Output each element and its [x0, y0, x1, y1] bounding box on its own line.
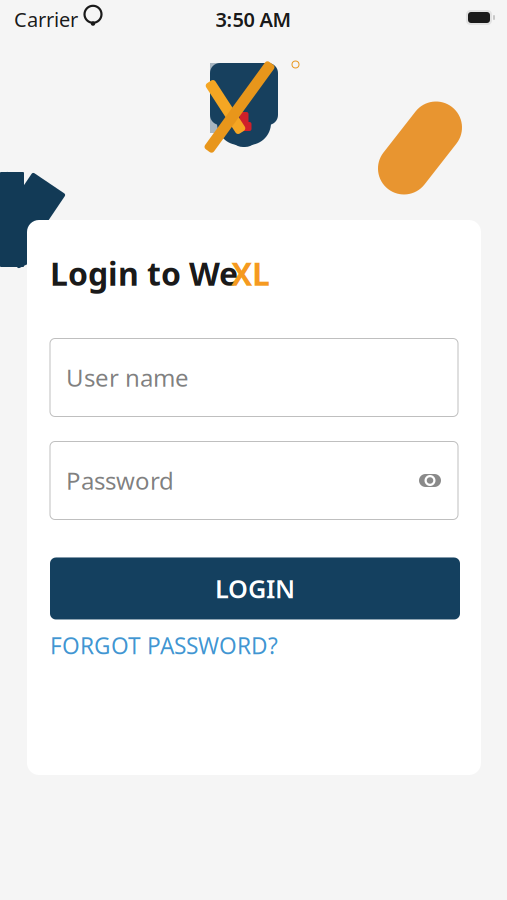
- staticText: LOGIN: [215, 572, 295, 605]
- button[interactable]: Password: [50, 441, 458, 519]
- staticText: 3:50 AM: [215, 6, 291, 33]
- staticText: Login to We: [50, 252, 238, 294]
- staticText: XL: [231, 252, 270, 294]
- staticText: User name: [66, 362, 189, 393]
- staticText: Password: [66, 465, 174, 496]
- staticText: Carrier: [14, 6, 78, 33]
- button[interactable]: LOGIN: [50, 557, 460, 619]
- staticText: FORGOT PASSWORD?: [50, 630, 278, 660]
- button[interactable]: User name: [50, 338, 458, 416]
- button[interactable]: FORGOT PASSWORD?: [50, 631, 460, 659]
